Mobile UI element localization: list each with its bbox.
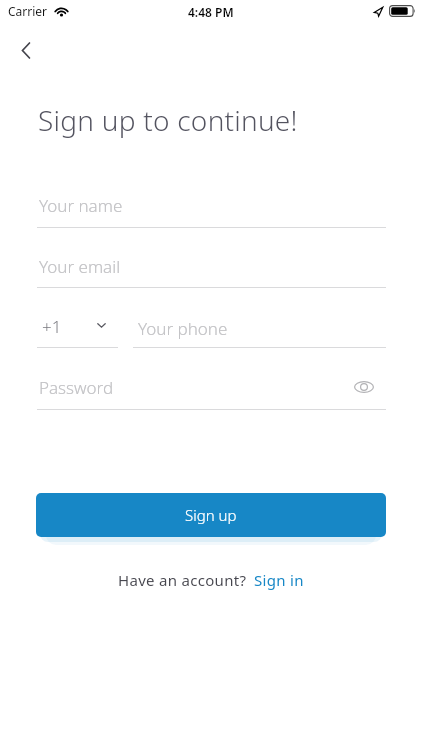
staticText: Sign up to continue! bbox=[38, 101, 298, 139]
staticText: Sign up bbox=[185, 505, 237, 525]
button[interactable] bbox=[37, 189, 386, 228]
button[interactable]: +1 bbox=[37, 305, 118, 347]
staticText: Password bbox=[39, 376, 114, 399]
button[interactable]: Sign up bbox=[36, 493, 386, 537]
staticText: 4:48 PM bbox=[188, 4, 234, 20]
button[interactable]: Sign in bbox=[254, 570, 304, 590]
button[interactable] bbox=[6, 30, 46, 70]
button[interactable] bbox=[37, 249, 386, 288]
button[interactable] bbox=[133, 308, 386, 348]
staticText: Your email bbox=[39, 255, 121, 278]
button[interactable] bbox=[37, 370, 337, 410]
staticText: Your name bbox=[39, 194, 123, 217]
staticText: Carrier bbox=[8, 3, 48, 19]
staticText: Your phone bbox=[138, 317, 228, 340]
staticText: Sign in bbox=[254, 570, 304, 590]
staticText: +1 bbox=[42, 315, 62, 338]
button[interactable] bbox=[345, 372, 383, 402]
staticText: Have an account? bbox=[118, 570, 247, 590]
